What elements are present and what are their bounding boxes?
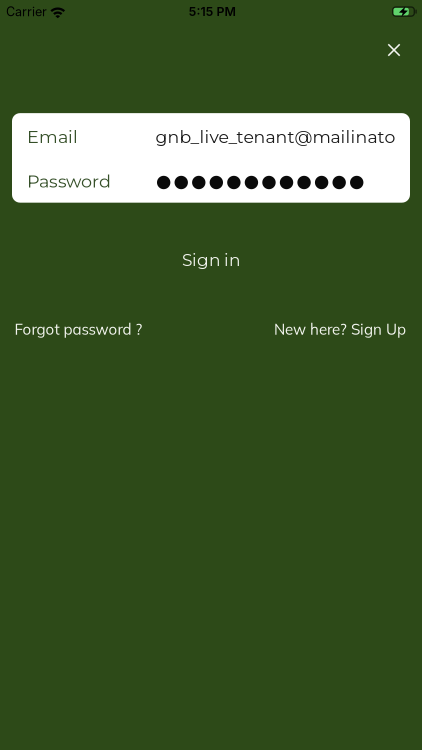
button[interactable]: Sign in — [12, 238, 410, 282]
staticText: gnb_live_tenant@mailinator.com — [155, 126, 422, 147]
staticText: Forgot password ? — [14, 319, 142, 338]
staticText: 5:15 PM — [188, 4, 235, 19]
staticText: Password — [27, 171, 111, 192]
staticText: Carrier — [6, 4, 47, 19]
button[interactable]: New here? Sign Up — [274, 319, 406, 338]
staticText: New here? Sign Up — [274, 319, 406, 338]
button[interactable]: Close — [379, 35, 409, 65]
staticText: Sign in — [182, 250, 240, 270]
button[interactable]: Forgot password ? — [14, 319, 142, 338]
button[interactable]: Password, secure text field — [12, 158, 410, 203]
button[interactable]: Email, gnb_live_tenant@mailinator.com — [12, 113, 410, 158]
staticText: Email — [27, 126, 78, 148]
